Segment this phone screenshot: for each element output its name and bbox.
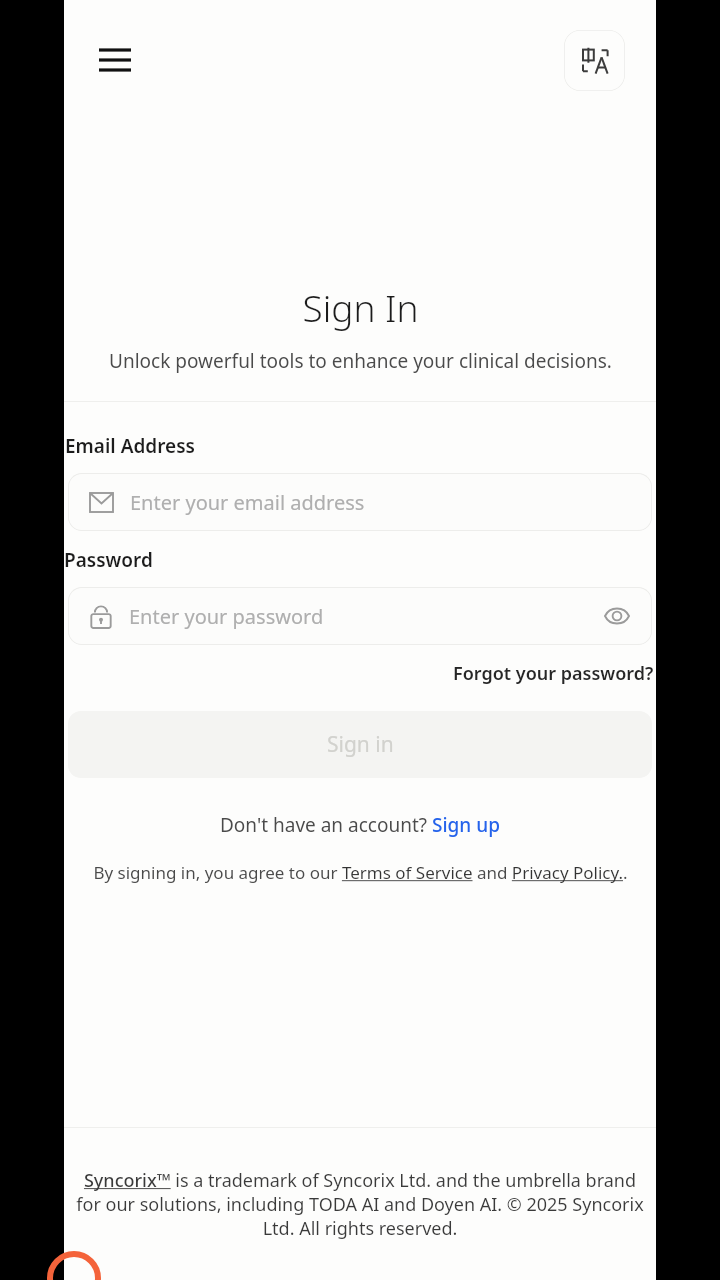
button[interactable]: Show password (600, 599, 634, 633)
staticText: Unlock powerful tools to enhance your cl… (109, 348, 612, 374)
staticText: Password (64, 547, 153, 573)
staticText: Enter your password (129, 603, 324, 630)
button[interactable]: Change language (564, 30, 625, 91)
staticText: Syncorix™ is a trademark of Syncorix Ltd… (70, 1168, 650, 1240)
staticText: By signing in, you agree to our Terms of… (93, 861, 628, 884)
button[interactable]: Sign up (432, 812, 500, 838)
staticText: Forgot your password? (453, 661, 654, 686)
button[interactable]: Forgot your password? (451, 659, 656, 688)
staticText: Enter your email address (130, 489, 365, 516)
button[interactable]: Sign in (68, 711, 652, 778)
staticText: Sign in (327, 730, 394, 759)
button[interactable]: Menu (85, 30, 145, 90)
staticText: Email Address (65, 433, 195, 459)
button[interactable]: Enter your email address (68, 473, 652, 531)
staticText: Don't have an account? (220, 812, 432, 838)
button[interactable]: Enter your password (68, 587, 652, 645)
staticText: Sign In (302, 282, 419, 332)
staticText: Sign up (432, 812, 500, 838)
